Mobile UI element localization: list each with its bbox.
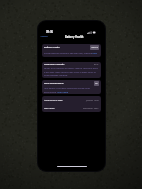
staticText: Phone batteries chemically age over time… — [44, 52, 99, 56]
button[interactable]: Battery Health — [42, 44, 101, 57]
staticText: December 2022 — [83, 107, 99, 110]
staticText: Normal — [91, 46, 98, 49]
staticText: Battery Health — [44, 46, 60, 49]
staticText: Battery Health — [65, 35, 84, 38]
staticText: Your battery is currently supporting nor… — [44, 87, 99, 93]
staticText: Manufacture Date — [44, 99, 63, 102]
staticText: January 2022 — [86, 99, 99, 102]
button[interactable]: Manufacture Date — [42, 96, 101, 104]
staticText: Maximum Capacity — [44, 63, 65, 66]
button[interactable]: First Used — [42, 104, 101, 112]
button[interactable]: Maximum Capacity — [42, 62, 101, 78]
staticText: ‹ Select — [40, 35, 48, 38]
staticText: Peak Performance — [44, 82, 64, 85]
staticText: OK — [95, 82, 98, 85]
staticText: Serves as an indicator of battery capaci… — [44, 67, 99, 76]
staticText: First Used — [44, 107, 55, 110]
staticText: 88 % — [94, 63, 99, 66]
button[interactable]: Peak Performance — [42, 80, 101, 94]
staticText: 09:06 — [46, 30, 54, 34]
button[interactable]: Back — [40, 35, 48, 38]
